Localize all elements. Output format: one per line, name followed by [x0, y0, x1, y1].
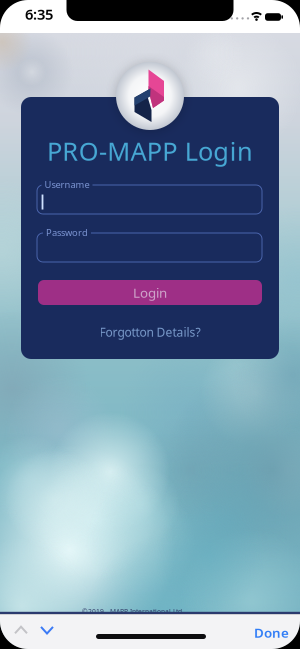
staticText: Username	[44, 178, 89, 191]
staticText: PRO-MAPP Login	[47, 134, 253, 168]
button[interactable]: Login	[38, 280, 262, 305]
staticText: Forgotton Details?	[99, 324, 200, 340]
button[interactable]	[37, 185, 262, 214]
button[interactable]: Next field	[37, 623, 57, 637]
button[interactable]: Previous field	[11, 623, 31, 637]
button[interactable]	[37, 233, 262, 262]
button[interactable]: Forgotton Details?	[99, 324, 200, 340]
staticText: Password	[46, 226, 88, 239]
staticText: ©2019 - MAPP International Ltd	[82, 607, 182, 616]
staticText: Done	[254, 624, 289, 641]
staticText: Login	[133, 284, 167, 301]
staticText: 6:35	[25, 4, 53, 24]
button[interactable]: Done	[254, 624, 289, 641]
